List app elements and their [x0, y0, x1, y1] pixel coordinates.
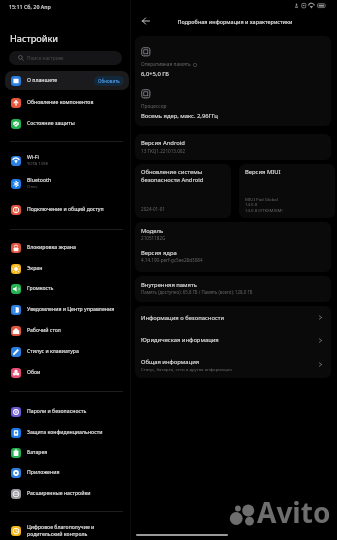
- button[interactable]: Пароли и безопасность: [5, 402, 129, 421]
- staticText: Bluetooth: [27, 177, 52, 184]
- button[interactable]: Приложения: [5, 463, 129, 482]
- staticText: Общая информация: [141, 358, 200, 366]
- staticText: Стилус и клавиатура: [27, 348, 79, 355]
- staticText: Обновить: [98, 78, 120, 84]
- staticText: Модель: [141, 227, 164, 235]
- staticText: Версия MIUI: [245, 168, 281, 176]
- button[interactable]: Блокировка экрана: [5, 238, 129, 257]
- staticText: Информация о безопасности: [141, 314, 225, 322]
- staticText: 15:11 Сб, 20 Апр: [9, 3, 51, 10]
- button[interactable]: Состояние защиты: [5, 114, 129, 133]
- staticText: О планшете: [27, 77, 58, 84]
- button[interactable]: Стилус и клавиатура: [5, 342, 129, 361]
- button[interactable]: Цифровое благополучие и родительский кон…: [5, 521, 129, 540]
- staticText: Уведомления и Центр управления: [27, 306, 115, 313]
- button[interactable]: О планшете: [5, 71, 129, 90]
- button[interactable]: Bluetooth: [5, 174, 129, 193]
- staticText: Настройки: [10, 32, 59, 45]
- staticText: Поиск настроек: [27, 55, 64, 62]
- staticText: Обои: [27, 369, 41, 376]
- staticText: Версия Android: [141, 139, 185, 147]
- button[interactable]: Защита конфиденциальности: [5, 423, 129, 442]
- button[interactable]: Юридическая информация: [135, 329, 331, 351]
- staticText: Память (доступно): 65,8 ГБ / Память (все…: [141, 289, 253, 295]
- staticText: YOTA 1398: [27, 161, 48, 167]
- button[interactable]: Обновить: [94, 76, 124, 86]
- staticText: 2024-01-01: [141, 206, 165, 212]
- button[interactable]: Обновление компонентов: [5, 93, 129, 112]
- staticText: Обновление компонентов: [27, 99, 94, 106]
- button[interactable]: Батарея: [5, 443, 129, 462]
- button[interactable]: Wi-Fi: [5, 151, 129, 170]
- staticText: Откл.: [27, 184, 38, 190]
- button[interactable]: Громкость: [5, 279, 129, 298]
- button[interactable]: Поиск настроек: [9, 51, 122, 65]
- staticText: Avito: [257, 493, 331, 531]
- staticText: Версия ядра: [141, 249, 177, 257]
- staticText: Приложения: [27, 469, 60, 476]
- staticText: 4.14.190-perf-gc5ee28d3084: [141, 257, 203, 263]
- button[interactable]: Подключение и общий доступ: [5, 200, 129, 219]
- staticText: Состояние защиты: [27, 120, 75, 127]
- staticText: Статус, батарея, сети и другая информаци…: [141, 366, 232, 372]
- staticText: Блокировка экрана: [27, 244, 76, 251]
- button[interactable]: Расширенные настройки: [5, 484, 129, 503]
- staticText: Рабочий стол: [27, 327, 61, 334]
- staticText: Цифровое благополучие и родительский кон…: [27, 524, 95, 538]
- button[interactable]: Обои: [5, 363, 129, 382]
- button[interactable]: Экран: [5, 259, 129, 278]
- staticText: Пароли и безопасность: [27, 408, 87, 415]
- staticText: Батарея: [27, 449, 48, 456]
- button[interactable]: Общая информация: [135, 351, 331, 378]
- button[interactable]: Информация о безопасности: [135, 306, 331, 329]
- staticText: Подключение и общий доступ: [27, 206, 104, 213]
- button[interactable]: Назад: [137, 12, 155, 30]
- staticText: 21051182G: [141, 235, 166, 241]
- staticText: Юридическая информация: [141, 336, 219, 344]
- staticText: Оперативная память: [141, 61, 191, 68]
- staticText: Расширенные настройки: [27, 490, 91, 497]
- staticText: Процессор: [141, 103, 167, 110]
- staticText: Обновление системы безопасности Android: [141, 168, 227, 184]
- staticText: Wi-Fi: [27, 154, 39, 161]
- staticText: 6,0+5,0 ГБ: [141, 70, 169, 78]
- button[interactable]: Рабочий стол: [5, 321, 129, 340]
- button[interactable]: Уведомления и Центр управления: [5, 300, 129, 319]
- staticText: MIUI Pad Global 14.0.8 14.0.8.0(TKXMIXM): [245, 196, 283, 214]
- staticText: Защита конфиденциальности: [27, 429, 103, 436]
- staticText: Экран: [27, 265, 43, 272]
- staticText: Подробная информация и характеристики: [133, 18, 337, 25]
- staticText: Восемь ядер, макс. 2,96ГГц: [141, 112, 218, 120]
- staticText: Внутренняя память: [141, 281, 197, 289]
- staticText: Громкость: [27, 285, 54, 292]
- staticText: 13 TKQ1.221013.002: [141, 148, 186, 154]
